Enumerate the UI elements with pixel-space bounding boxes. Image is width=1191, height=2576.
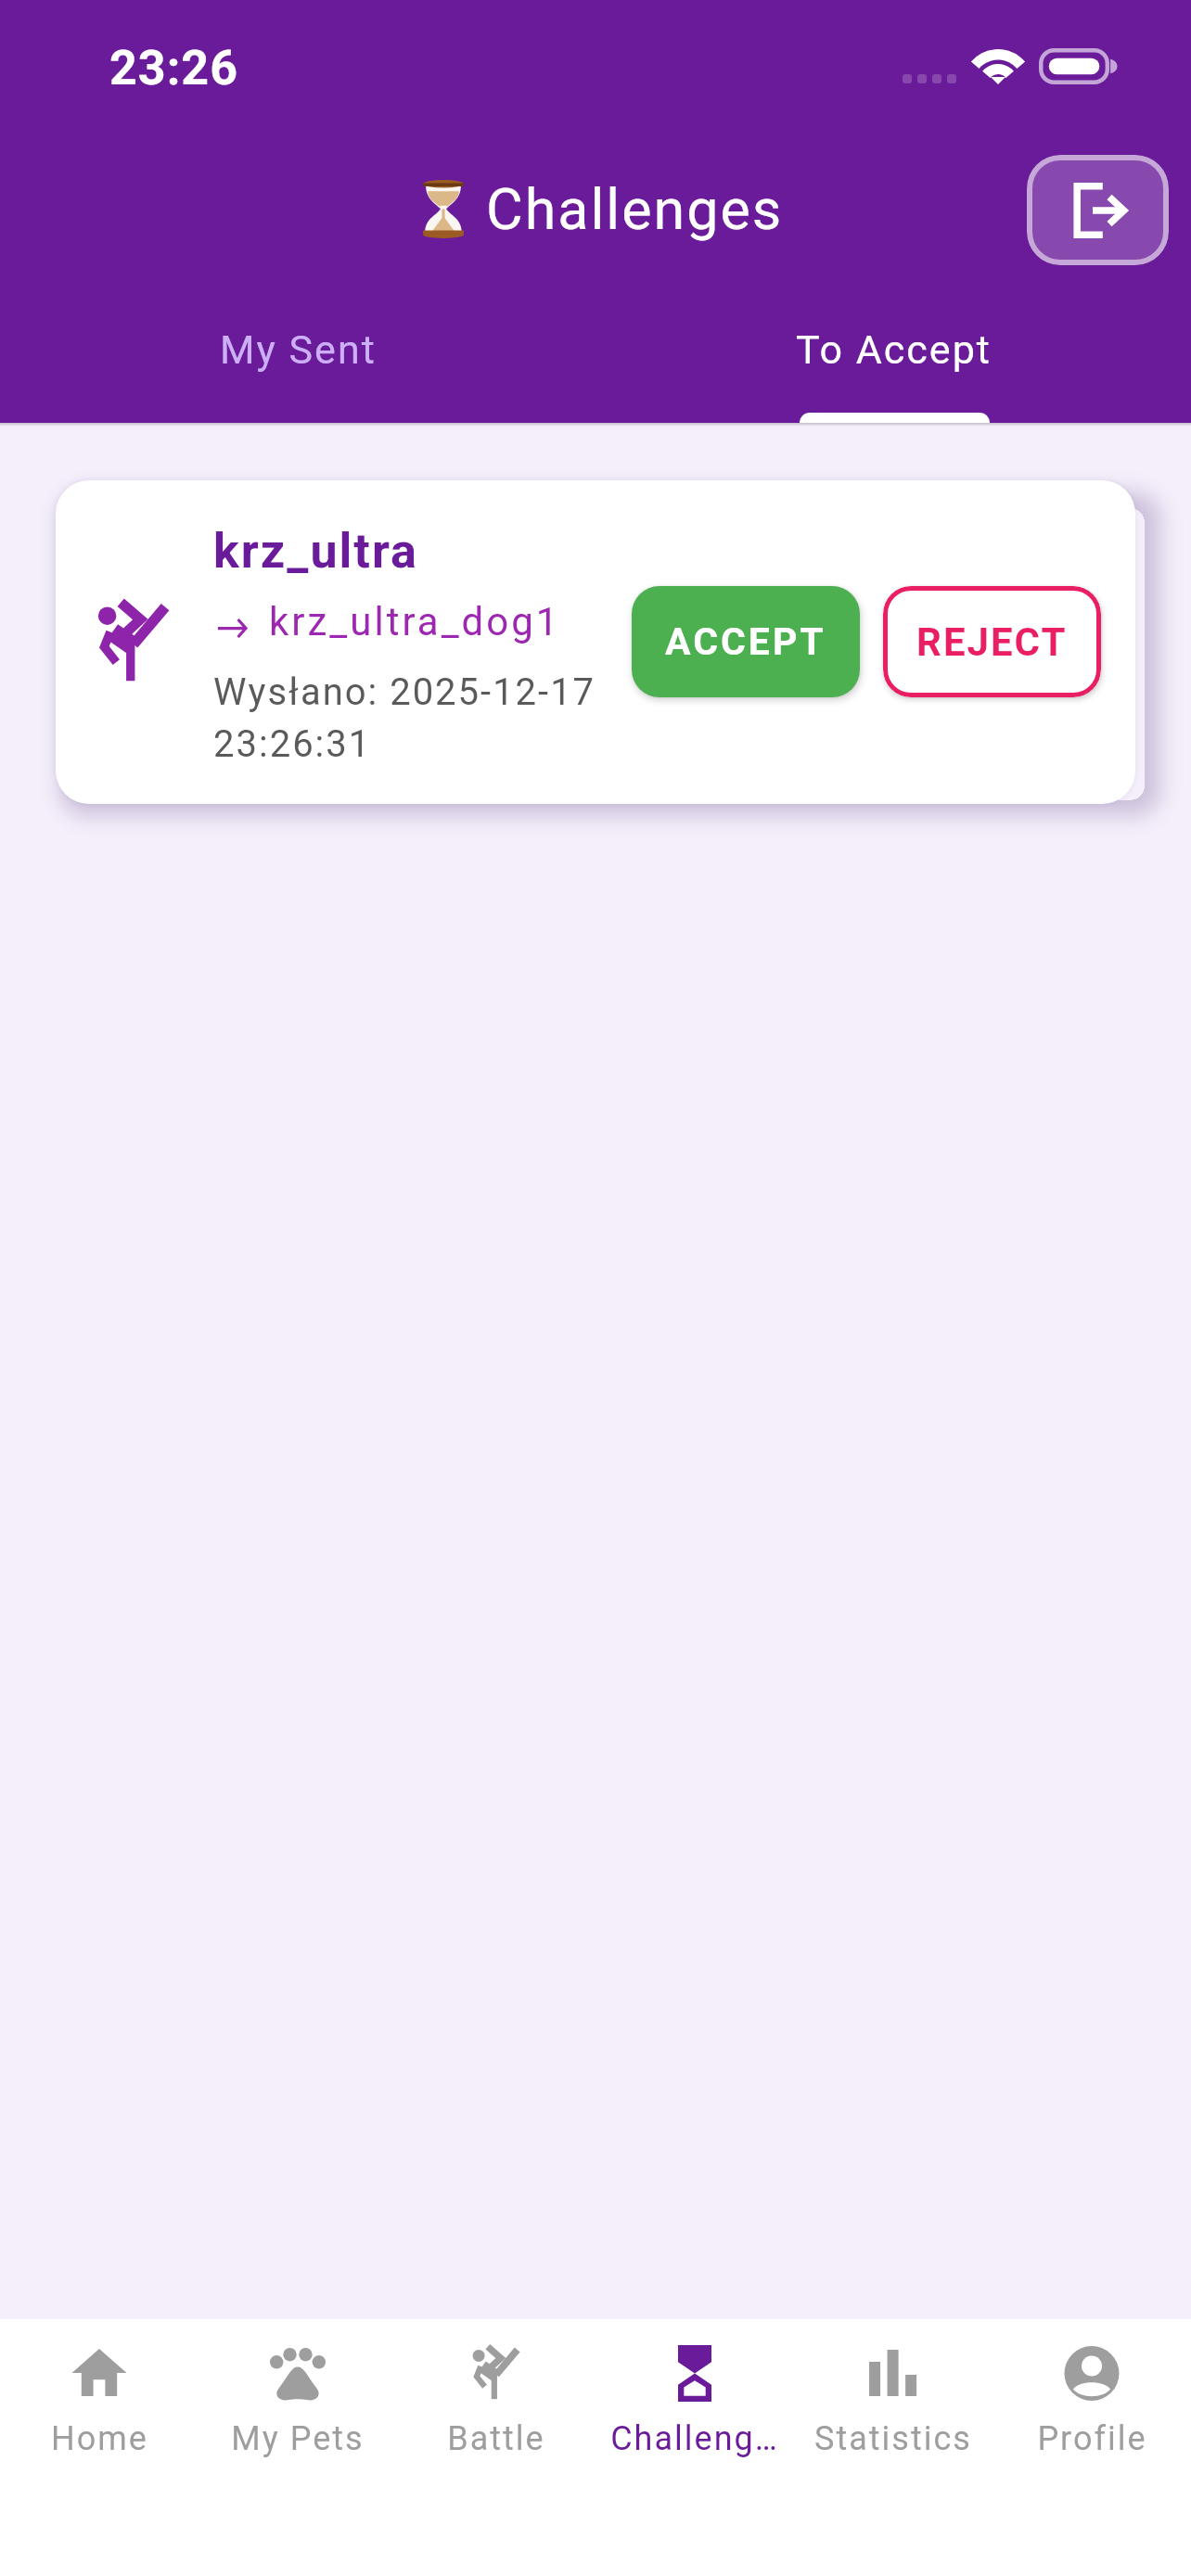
staticText: Challeng… [610, 2419, 779, 2458]
button[interactable]: Home [0, 2319, 198, 2458]
button[interactable]: Profile [992, 2319, 1191, 2458]
button[interactable]: ACCEPT [632, 586, 860, 697]
staticText: ACCEPT [665, 619, 826, 664]
button[interactable]: My Pets [198, 2319, 397, 2458]
button[interactable]: Battle [397, 2319, 595, 2458]
staticText: REJECT [916, 619, 1068, 665]
button[interactable]: My Sent [0, 313, 595, 423]
button[interactable]: Challeng… [595, 2319, 794, 2458]
staticText: To Accept [796, 326, 992, 373]
staticText: My Pets [231, 2419, 365, 2458]
button[interactable]: To Accept [595, 313, 1191, 423]
staticText: Battle [447, 2419, 545, 2458]
staticText: krz_ultra_dog1 [269, 599, 561, 644]
button[interactable]: Statistics [794, 2319, 992, 2458]
button[interactable]: REJECT [883, 586, 1101, 697]
staticText: Profile [1037, 2419, 1147, 2458]
button[interactable]: krz_ultra [56, 480, 1135, 804]
staticText: krz_ultra [213, 523, 418, 580]
staticText: Wysłano: 2025-12-17 23:26:31 [213, 670, 612, 765]
staticText: Challenges [486, 176, 784, 242]
staticText: 23:26 [109, 40, 238, 96]
staticText: Statistics [814, 2419, 972, 2458]
staticText: Home [51, 2419, 148, 2458]
staticText: My Sent [220, 326, 377, 373]
button[interactable]: Logout [1027, 155, 1169, 265]
